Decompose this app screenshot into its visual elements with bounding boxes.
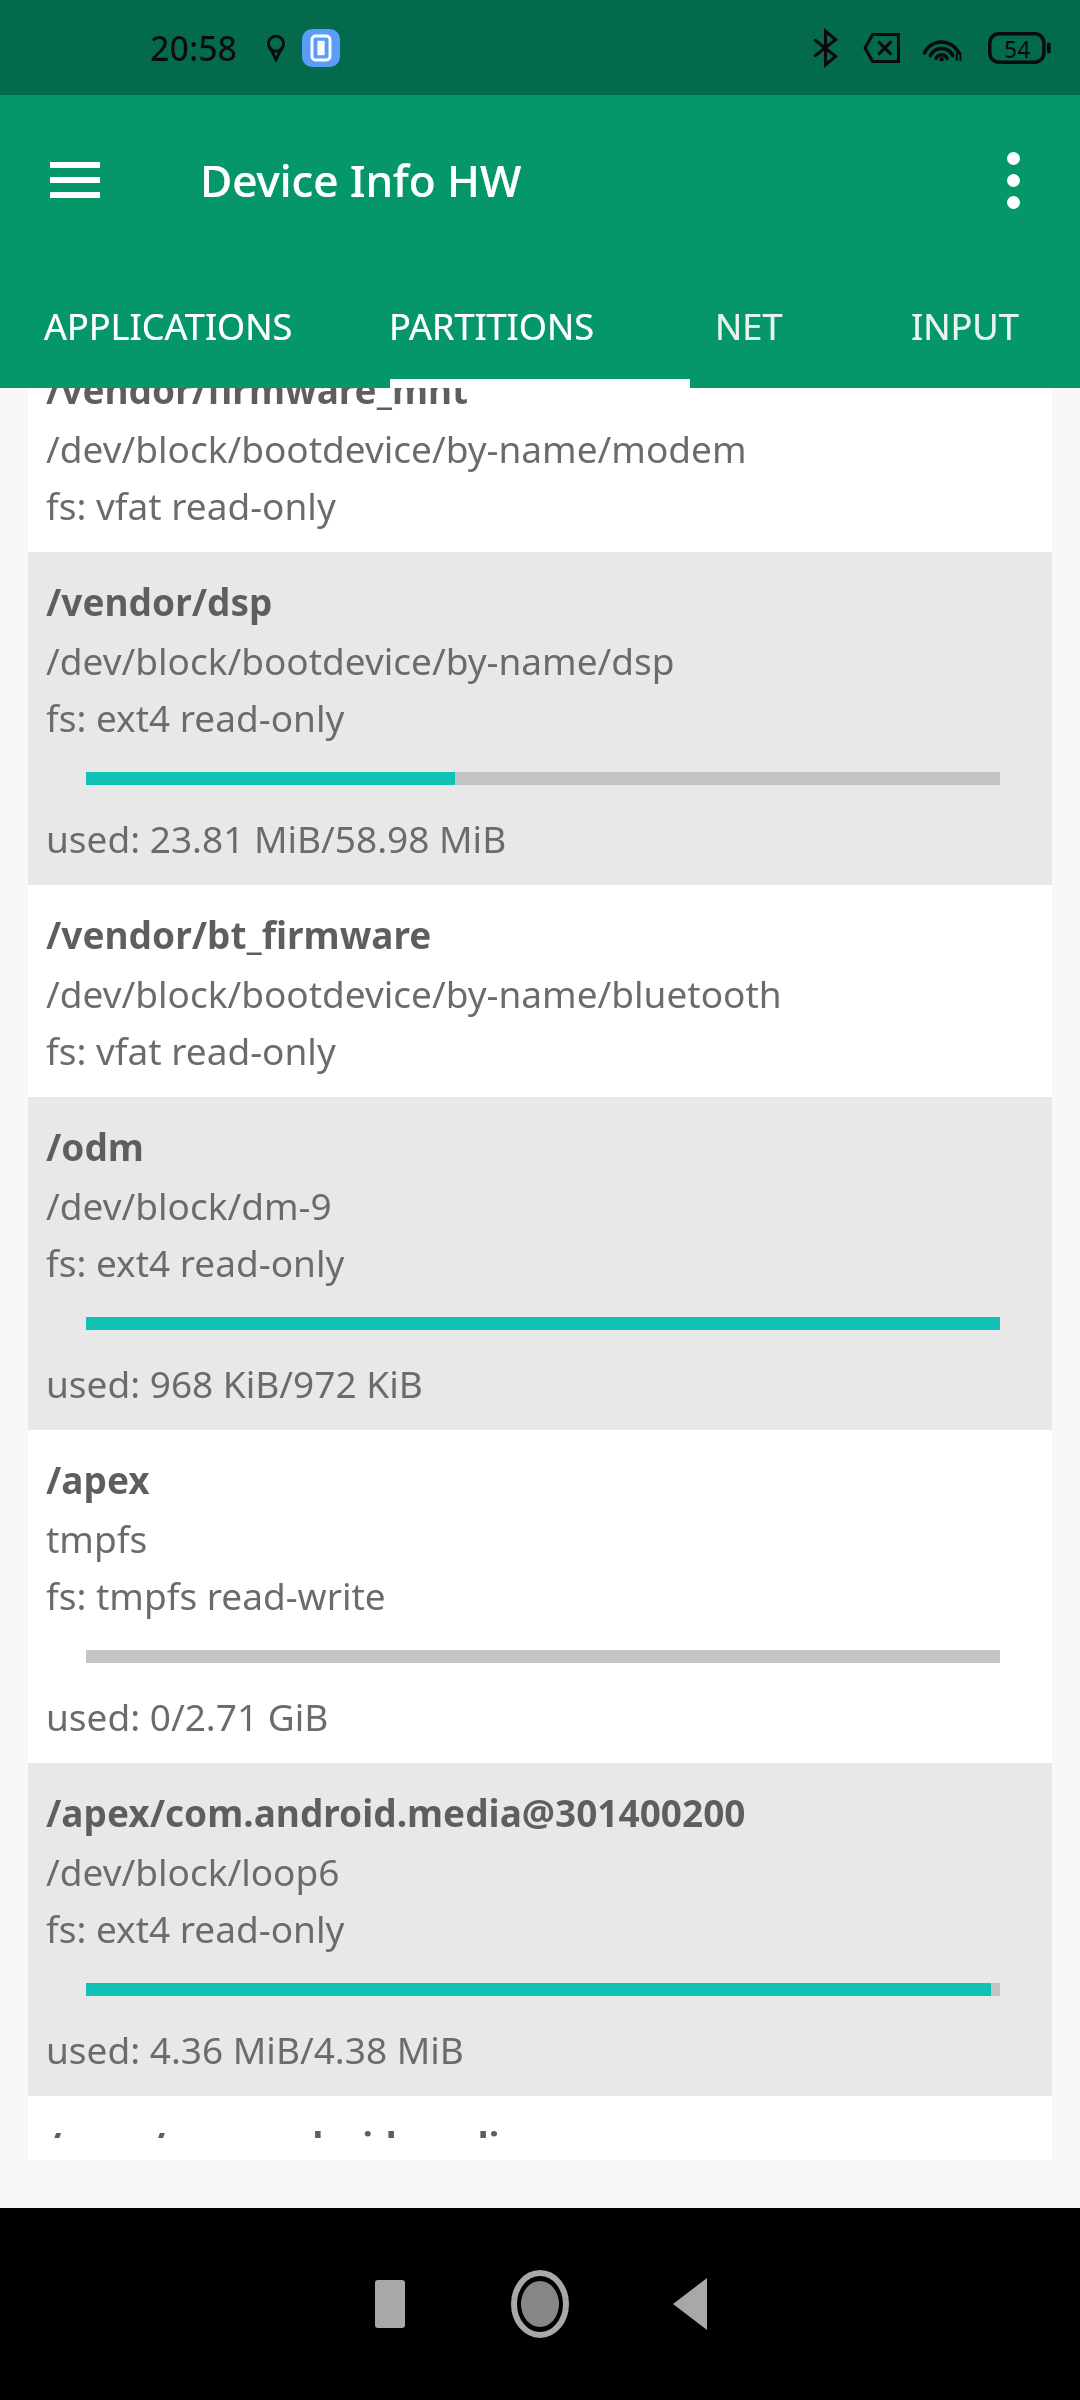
staticText: /vendor/dsp [46, 576, 273, 626]
staticText: /dev/block/loop6 [46, 1846, 340, 1896]
staticText: fs: ext4 read-only [46, 1903, 345, 1953]
button[interactable]: /vendor/dsp [28, 552, 1052, 885]
staticText: fs: vfat read-only [46, 480, 336, 530]
staticText: fs: vfat read-only [46, 1025, 336, 1075]
staticText: NET [715, 302, 783, 351]
staticText: /dev/block/bootdevice/by-name/bluetooth [46, 968, 782, 1018]
staticText: Device Info HW [200, 150, 522, 210]
staticText: /apex/com.android.media@301400200 [46, 1787, 746, 1837]
button[interactable]: More options [968, 135, 1058, 225]
button[interactable]: /vendor/firmware_mnt [28, 388, 1052, 552]
staticText: PARTITIONS [389, 302, 595, 351]
staticText: /vendor/bt_firmware [46, 909, 432, 959]
staticText: 54 [1004, 33, 1031, 64]
staticText: APPLICATIONS [44, 302, 293, 351]
button[interactable]: /odm [28, 1097, 1052, 1430]
button[interactable]: Home [465, 2229, 615, 2379]
button[interactable]: /vendor/bt_firmware [28, 885, 1052, 1097]
button[interactable]: NET [647, 265, 850, 388]
button[interactable]: Back [615, 2229, 765, 2379]
staticText: /dev/block/bootdevice/by-name/dsp [46, 635, 675, 685]
button[interactable]: PARTITIONS [337, 265, 647, 388]
staticText: fs: ext4 read-only [46, 1237, 345, 1287]
staticText: fs: tmpfs read-write [46, 1570, 386, 1620]
button[interactable]: /apex/com.android.media@301400200 [28, 1763, 1052, 2096]
staticText: fs: ext4 read-only [46, 692, 345, 742]
staticText: INPUT [911, 302, 1019, 351]
staticText: /apex/com.android.media [46, 2120, 522, 2138]
staticText: used: 0/2.71 GiB [46, 1691, 329, 1741]
staticText: /apex [46, 1454, 150, 1504]
button[interactable]: Open navigation drawer [32, 137, 118, 223]
button[interactable]: APPLICATIONS [0, 265, 337, 388]
staticText: /odm [46, 1121, 144, 1171]
button[interactable]: /apex [28, 1430, 1052, 1763]
button[interactable]: INPUT [850, 265, 1080, 388]
staticText: 20:58 [150, 25, 238, 71]
button[interactable]: Recent apps [315, 2229, 465, 2379]
staticText: /dev/block/dm-9 [46, 1180, 332, 1230]
staticText: tmpfs [46, 1513, 148, 1563]
button[interactable]: /apex/com.android.media [28, 2096, 1052, 2160]
staticText: /dev/block/bootdevice/by-name/modem [46, 423, 747, 473]
staticText: used: 968 KiB/972 KiB [46, 1358, 423, 1408]
staticText: used: 4.36 MiB/4.38 MiB [46, 2024, 464, 2074]
staticText: used: 23.81 MiB/58.98 MiB [46, 813, 507, 863]
staticText: /vendor/firmware_mnt [46, 388, 469, 414]
